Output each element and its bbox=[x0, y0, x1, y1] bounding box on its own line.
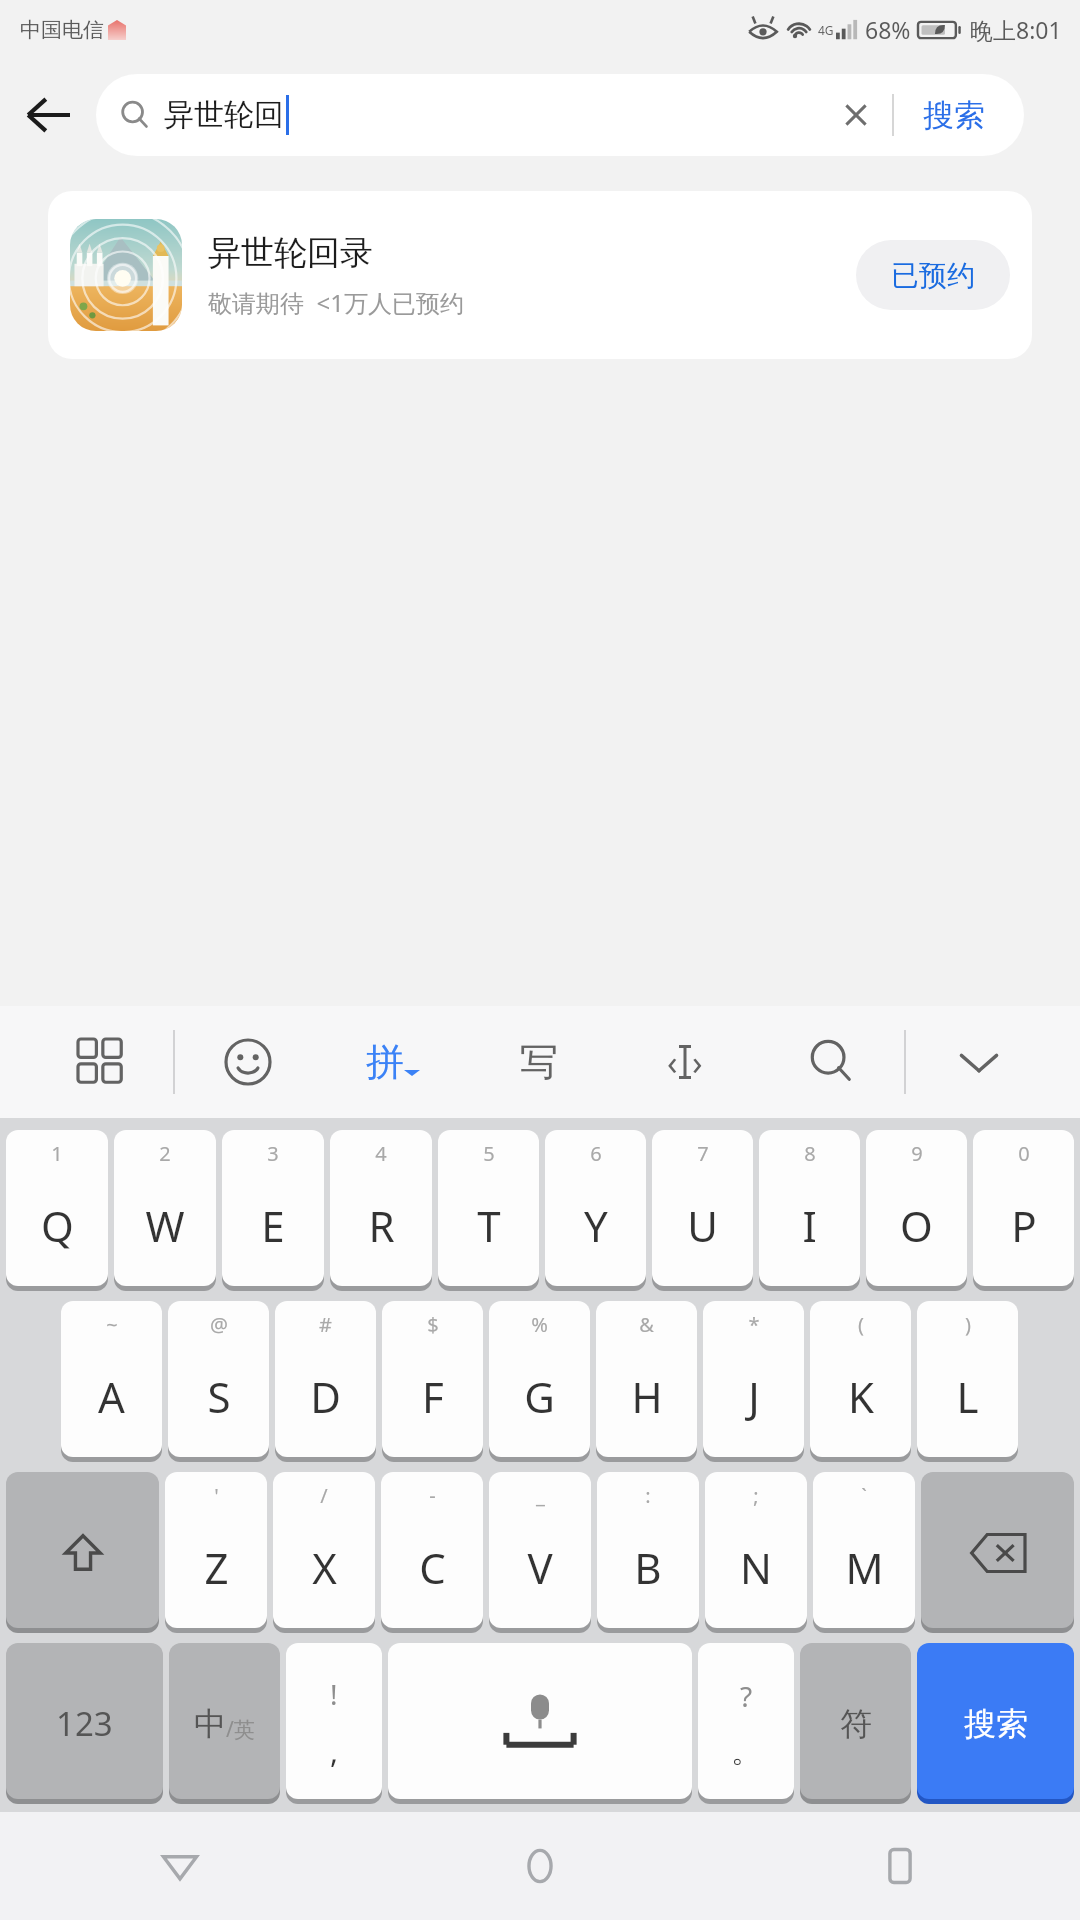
staticText: R bbox=[368, 1197, 395, 1254]
button[interactable]: 异世轮回 bbox=[96, 74, 1024, 156]
staticText: V bbox=[527, 1539, 553, 1596]
button[interactable]: & bbox=[596, 1301, 697, 1462]
staticText: ! bbox=[330, 1675, 338, 1713]
staticText: 123 bbox=[56, 1701, 113, 1746]
staticText: 搜索 bbox=[964, 1704, 1028, 1744]
button[interactable]: $ bbox=[382, 1301, 483, 1462]
staticText: 2 bbox=[159, 1140, 171, 1167]
button[interactable]: 0 bbox=[973, 1130, 1074, 1291]
staticText: W bbox=[145, 1197, 185, 1254]
button[interactable]: 已预约 bbox=[856, 240, 1010, 310]
button[interactable]: 返回 bbox=[0, 67, 96, 163]
button[interactable]: 搜索 bbox=[758, 1006, 904, 1118]
button[interactable]: 异世轮回录 bbox=[48, 191, 1032, 359]
button[interactable]: 返回 bbox=[0, 1812, 360, 1920]
button[interactable]: @ bbox=[168, 1301, 269, 1462]
button[interactable]: ! bbox=[286, 1643, 382, 1804]
button[interactable]: * bbox=[703, 1301, 804, 1462]
staticText: 晚上8:01 bbox=[970, 14, 1062, 45]
button[interactable]: ' bbox=[165, 1472, 267, 1633]
button[interactable]: 收起键盘 bbox=[906, 1006, 1052, 1118]
button[interactable]: % bbox=[489, 1301, 590, 1462]
staticText: 拼 bbox=[366, 1038, 404, 1086]
staticText: K bbox=[848, 1368, 874, 1425]
button[interactable]: ; bbox=[705, 1472, 807, 1633]
staticText: ' bbox=[214, 1482, 219, 1509]
button[interactable]: - bbox=[381, 1472, 483, 1633]
button[interactable]: 表情 bbox=[175, 1006, 320, 1118]
staticText: 6 bbox=[590, 1140, 602, 1167]
staticText: ? bbox=[740, 1677, 753, 1715]
button[interactable]: ~ bbox=[61, 1301, 162, 1462]
staticText: 8 bbox=[804, 1140, 816, 1167]
staticText: ~ bbox=[106, 1311, 118, 1338]
staticText: M bbox=[845, 1539, 884, 1596]
button[interactable]: ? bbox=[698, 1643, 794, 1804]
staticText: 5 bbox=[483, 1140, 495, 1167]
staticText: : bbox=[645, 1482, 651, 1509]
staticText: 4G bbox=[818, 22, 834, 38]
staticText: ; bbox=[753, 1482, 759, 1509]
button[interactable]: 主屏幕 bbox=[360, 1812, 720, 1920]
button[interactable]: 1 bbox=[6, 1130, 108, 1291]
button[interactable]: 清除 bbox=[820, 79, 892, 151]
button[interactable]: 搜索 bbox=[894, 74, 1014, 156]
staticText: L bbox=[956, 1368, 979, 1425]
button[interactable]: 8 bbox=[759, 1130, 860, 1291]
staticText: S bbox=[207, 1368, 231, 1425]
button[interactable]: ( bbox=[810, 1301, 911, 1462]
button[interactable]: 键盘布局 bbox=[28, 1006, 173, 1118]
staticText: 写 bbox=[520, 1038, 558, 1086]
button[interactable]: _ bbox=[489, 1472, 591, 1633]
staticText: 9 bbox=[911, 1140, 923, 1167]
button[interactable]: 手写输入 bbox=[466, 1006, 612, 1118]
staticText: Q bbox=[41, 1197, 74, 1254]
staticText: Z bbox=[204, 1539, 229, 1596]
staticText: T bbox=[477, 1197, 501, 1254]
staticText: 中国电信 bbox=[20, 17, 104, 43]
staticText: A bbox=[98, 1368, 125, 1425]
button[interactable]: # bbox=[275, 1301, 376, 1462]
staticText: D bbox=[310, 1368, 341, 1425]
staticText: G bbox=[524, 1368, 555, 1425]
staticText: ) bbox=[965, 1311, 971, 1338]
button[interactable]: 2 bbox=[114, 1130, 216, 1291]
staticText: % bbox=[531, 1311, 548, 1338]
staticText: F bbox=[422, 1368, 444, 1425]
button[interactable]: 9 bbox=[866, 1130, 967, 1291]
staticText: N bbox=[740, 1539, 772, 1596]
staticText: E bbox=[261, 1197, 285, 1254]
button[interactable]: 空格 bbox=[388, 1643, 692, 1804]
staticText: 敬请期待 <1万人已预约 bbox=[208, 286, 464, 319]
staticText: ( bbox=[858, 1311, 864, 1338]
staticText: @ bbox=[210, 1311, 228, 1338]
staticText: 68% bbox=[865, 14, 911, 45]
staticText: Y bbox=[584, 1197, 608, 1254]
staticText: # bbox=[319, 1311, 332, 1338]
button[interactable]: / bbox=[273, 1472, 375, 1633]
button[interactable]: 删除 bbox=[921, 1472, 1074, 1633]
button[interactable]: 光标移动 bbox=[612, 1006, 758, 1118]
button[interactable]: ) bbox=[917, 1301, 1018, 1462]
button[interactable]: 切换大小写 bbox=[6, 1472, 159, 1633]
button[interactable]: 符号 bbox=[800, 1643, 911, 1804]
staticText: ‹ bbox=[667, 1039, 678, 1085]
staticText: $ bbox=[427, 1311, 439, 1338]
staticText: ` bbox=[861, 1482, 867, 1509]
button[interactable]: 拼音输入 bbox=[320, 1006, 466, 1118]
button[interactable]: 最近任务 bbox=[720, 1812, 1080, 1920]
staticText: 符 bbox=[840, 1704, 872, 1744]
button[interactable]: 搜索 bbox=[917, 1643, 1074, 1804]
staticText: , bbox=[330, 1731, 339, 1772]
button[interactable]: 3 bbox=[222, 1130, 324, 1291]
button[interactable]: 数字键盘 bbox=[6, 1643, 163, 1804]
button[interactable]: 4 bbox=[330, 1130, 432, 1291]
staticText: & bbox=[639, 1311, 654, 1338]
button[interactable]: 5 bbox=[438, 1130, 539, 1291]
button[interactable]: ` bbox=[813, 1472, 915, 1633]
button[interactable]: : bbox=[597, 1472, 699, 1633]
button[interactable]: 7 bbox=[652, 1130, 753, 1291]
button[interactable]: 6 bbox=[545, 1130, 646, 1291]
button[interactable]: 中英文切换 bbox=[169, 1643, 280, 1804]
staticText: 3 bbox=[267, 1140, 279, 1167]
